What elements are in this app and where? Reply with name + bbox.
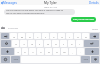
staticText: .?123	[13, 58, 18, 61]
button[interactable]: k	[68, 40, 75, 47]
staticText: d	[31, 42, 33, 45]
button[interactable]: w	[18, 33, 25, 39]
staticText: a	[15, 42, 17, 45]
button[interactable]: j	[60, 40, 67, 47]
button[interactable]: s	[20, 40, 27, 47]
button[interactable]: Hide keyboard	[91, 56, 99, 63]
staticText: s	[23, 42, 25, 45]
staticText: f	[39, 42, 40, 45]
staticText: x	[24, 50, 26, 53]
button[interactable]: Details	[88, 1, 100, 5]
staticText: Today 9:41 AM	[44, 6, 57, 9]
staticText: talk to you about something important.	[6, 12, 45, 15]
staticText: w	[21, 35, 23, 38]
staticText: e	[29, 35, 31, 38]
staticText: m	[63, 50, 66, 53]
button[interactable]: Shift	[85, 48, 99, 55]
button[interactable]: r	[34, 33, 41, 39]
button[interactable]: .?123	[81, 56, 90, 63]
button[interactable]: g	[44, 40, 51, 47]
button[interactable]: Return	[84, 40, 99, 47]
button[interactable]: Will you please call me when you have a …	[4, 9, 75, 15]
staticText: Will you please call me when you have a …	[6, 9, 63, 12]
button[interactable]: p	[82, 33, 89, 39]
staticText: iMessage	[8, 27, 19, 30]
staticText: o	[77, 35, 79, 38]
button[interactable]: Messages	[0, 1, 18, 5]
button[interactable]: iMessage	[6, 26, 90, 30]
button[interactable]: q	[10, 33, 17, 39]
staticText: t	[45, 35, 46, 38]
button[interactable]: t	[42, 33, 49, 39]
staticText: h	[55, 42, 57, 45]
staticText: k	[71, 42, 73, 45]
staticText: z	[17, 50, 19, 53]
staticText: l	[79, 42, 80, 45]
button[interactable]: z	[15, 48, 21, 55]
button[interactable]: c	[29, 48, 36, 55]
button[interactable]: m	[61, 48, 68, 55]
button[interactable]: Camera	[1, 26, 5, 30]
staticText: Sure, I'll call you soon	[73, 18, 95, 21]
staticText: v	[40, 50, 42, 53]
button[interactable]: .?123	[11, 56, 20, 63]
button[interactable]: Shift	[1, 48, 14, 55]
button[interactable]: Emoji	[1, 56, 10, 63]
staticText: .?123	[83, 58, 88, 61]
button[interactable]: h	[52, 40, 59, 47]
button[interactable]: o	[74, 33, 81, 39]
staticText: u	[61, 35, 63, 38]
button[interactable]: u	[58, 33, 65, 39]
button[interactable]: i	[66, 33, 73, 39]
staticText: j	[63, 42, 64, 45]
button[interactable]: f	[36, 40, 43, 47]
button[interactable]: b	[45, 48, 52, 55]
staticText: b	[48, 50, 50, 53]
staticText: g	[47, 42, 49, 45]
button[interactable]: Caps lock	[1, 40, 11, 47]
staticText: c	[32, 50, 34, 53]
button[interactable]: y	[50, 33, 57, 39]
staticText: q	[13, 35, 15, 38]
staticText: r	[37, 35, 39, 38]
staticText: Messages	[3, 1, 17, 5]
button[interactable]: n	[53, 48, 60, 55]
button[interactable]: x	[22, 48, 28, 55]
staticText: My Tyler	[44, 1, 57, 5]
button[interactable]: d	[28, 40, 35, 47]
button[interactable]: e	[26, 33, 33, 39]
staticText: n	[56, 50, 58, 53]
button[interactable]: Backspace	[90, 33, 99, 39]
button[interactable]: Tab	[1, 33, 9, 39]
button[interactable]: l	[76, 40, 83, 47]
staticText: .	[80, 50, 81, 53]
button[interactable]: a	[12, 40, 19, 47]
staticText: p	[85, 35, 87, 38]
staticText: i	[69, 35, 70, 38]
button[interactable]: Send	[91, 27, 99, 30]
button[interactable]: Sure, I'll call you soon	[71, 17, 96, 22]
button[interactable]: v	[37, 48, 44, 55]
staticText: y	[53, 35, 55, 38]
